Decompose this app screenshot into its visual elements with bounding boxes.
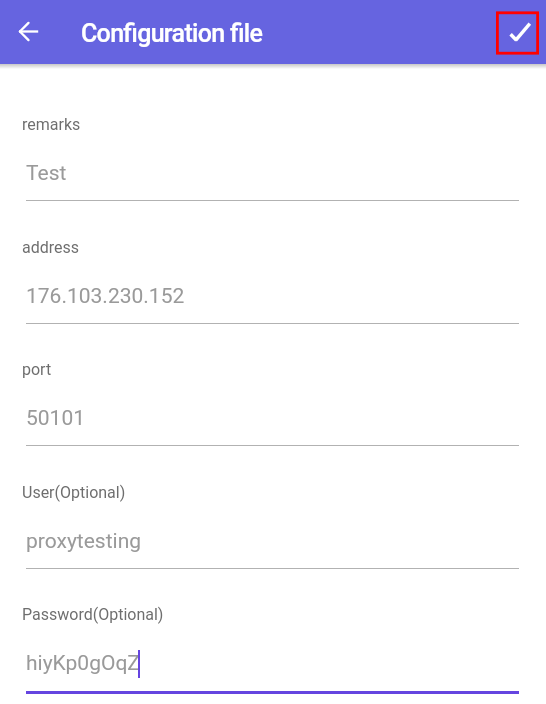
- button[interactable]: Save: [498, 13, 538, 53]
- staticText: address: [22, 238, 80, 257]
- button[interactable]: [26, 276, 519, 326]
- staticText: User(Optional): [22, 483, 126, 502]
- staticText: port: [22, 360, 52, 379]
- button[interactable]: [26, 521, 519, 571]
- staticText: Test: [26, 161, 67, 186]
- button[interactable]: [26, 153, 519, 203]
- staticText: 50101: [26, 406, 86, 431]
- button[interactable]: Back: [6, 9, 52, 55]
- staticText: proxytesting: [26, 529, 142, 554]
- staticText: 176.103.230.152: [26, 284, 185, 309]
- staticText: Password(Optional): [22, 605, 164, 624]
- button[interactable]: [26, 643, 519, 693]
- button[interactable]: [26, 398, 519, 448]
- staticText: hiyKp0gOqZ: [26, 651, 140, 676]
- staticText: Configuration file: [81, 19, 263, 48]
- staticText: remarks: [22, 115, 81, 134]
